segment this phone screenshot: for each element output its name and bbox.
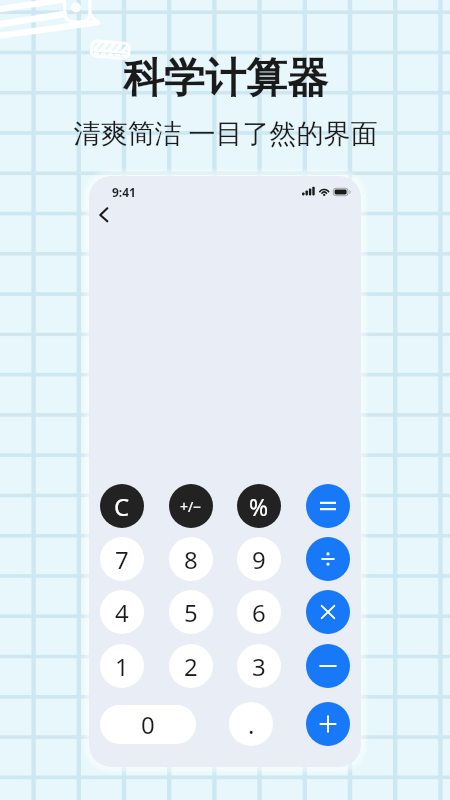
button[interactable]: 9 bbox=[237, 537, 281, 581]
staticText: 9:41 bbox=[112, 184, 136, 200]
staticText: 科学计算器 bbox=[123, 53, 328, 105]
button[interactable]: % bbox=[237, 484, 281, 528]
button[interactable]: . bbox=[229, 702, 273, 746]
button[interactable]: C bbox=[100, 484, 144, 528]
staticText: 4 bbox=[115, 596, 129, 629]
button[interactable]: Equals bbox=[306, 484, 350, 528]
staticText: 清爽简洁 一目了然的界面 bbox=[73, 114, 378, 151]
staticText: 3 bbox=[252, 650, 266, 683]
staticText: . bbox=[248, 708, 255, 741]
button[interactable]: 7 bbox=[100, 537, 144, 581]
staticText: 0 bbox=[141, 708, 155, 741]
staticText: % bbox=[249, 491, 269, 522]
button[interactable]: 3 bbox=[237, 644, 281, 688]
staticText: 2 bbox=[184, 650, 198, 683]
staticText: 5 bbox=[184, 596, 198, 629]
button[interactable]: 0 bbox=[100, 705, 196, 744]
staticText: 1 bbox=[115, 650, 129, 683]
staticText: 7 bbox=[115, 543, 129, 576]
button[interactable]: Divide bbox=[306, 537, 350, 581]
button[interactable]: 4 bbox=[100, 590, 144, 634]
staticText: 8 bbox=[184, 543, 198, 576]
staticText: +/− bbox=[180, 497, 202, 516]
button[interactable]: Multiply bbox=[306, 590, 350, 634]
button[interactable]: 2 bbox=[169, 644, 213, 688]
button[interactable]: Plus bbox=[306, 702, 350, 746]
button[interactable]: Back bbox=[93, 201, 121, 229]
button[interactable]: Minus bbox=[306, 644, 350, 688]
button[interactable]: 5 bbox=[169, 590, 213, 634]
staticText: 6 bbox=[252, 596, 266, 629]
button[interactable]: +/− bbox=[169, 484, 213, 528]
button[interactable]: 6 bbox=[237, 590, 281, 634]
button[interactable]: 8 bbox=[169, 537, 213, 581]
button[interactable]: 1 bbox=[100, 644, 144, 688]
staticText: 9 bbox=[252, 543, 266, 576]
staticText: C bbox=[114, 490, 130, 523]
